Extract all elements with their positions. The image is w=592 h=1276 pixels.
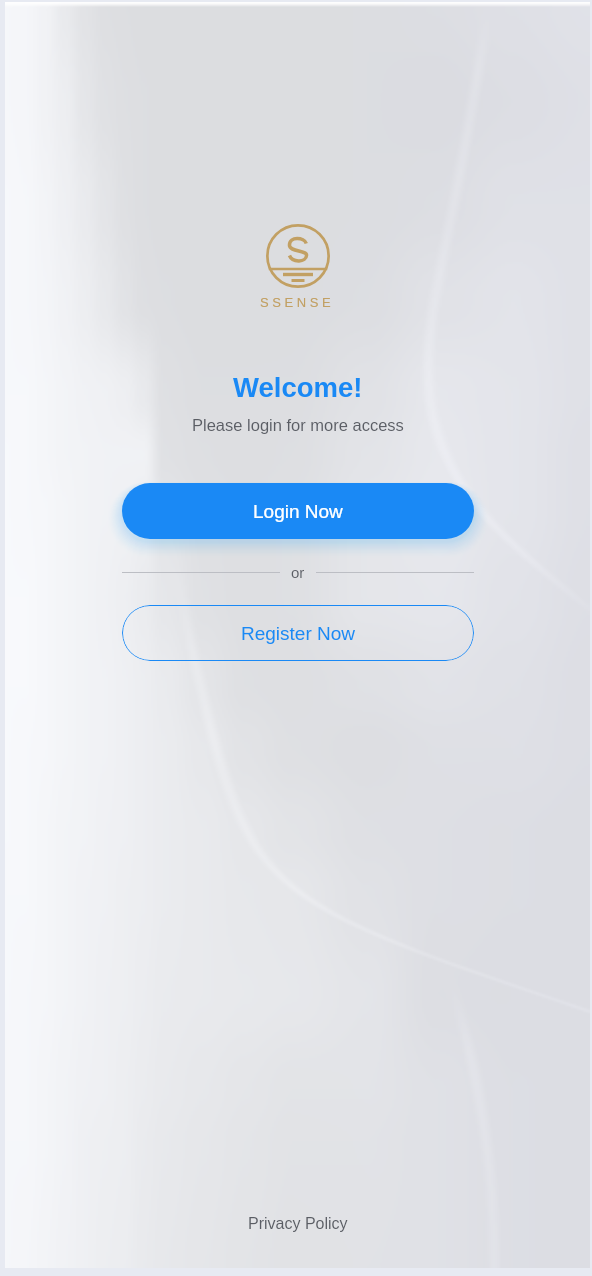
- button[interactable]: Privacy Policy: [234, 1210, 362, 1238]
- staticText: SSENSE: [260, 295, 335, 310]
- staticText: Please login for more access: [192, 416, 404, 434]
- staticText: Register Now: [241, 623, 356, 644]
- button[interactable]: Register Now: [122, 605, 474, 661]
- staticText: Welcome!: [233, 372, 363, 403]
- staticText: or: [291, 564, 305, 581]
- staticText: Privacy Policy: [248, 1215, 348, 1233]
- button[interactable]: Login Now: [122, 483, 474, 539]
- staticText: Login Now: [253, 501, 343, 522]
